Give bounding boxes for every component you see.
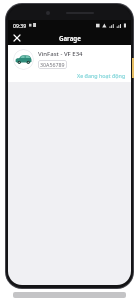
button[interactable]: Close [10, 31, 23, 44]
staticText: 09:39 [13, 22, 27, 29]
staticText: Xe đang hoạt động [77, 72, 126, 79]
button[interactable]: VinFast - VF E34 [8, 45, 131, 82]
staticText: Garage [59, 34, 81, 42]
staticText: 30A56789 [40, 61, 65, 68]
staticText: VinFast - VF E34 [38, 50, 83, 58]
